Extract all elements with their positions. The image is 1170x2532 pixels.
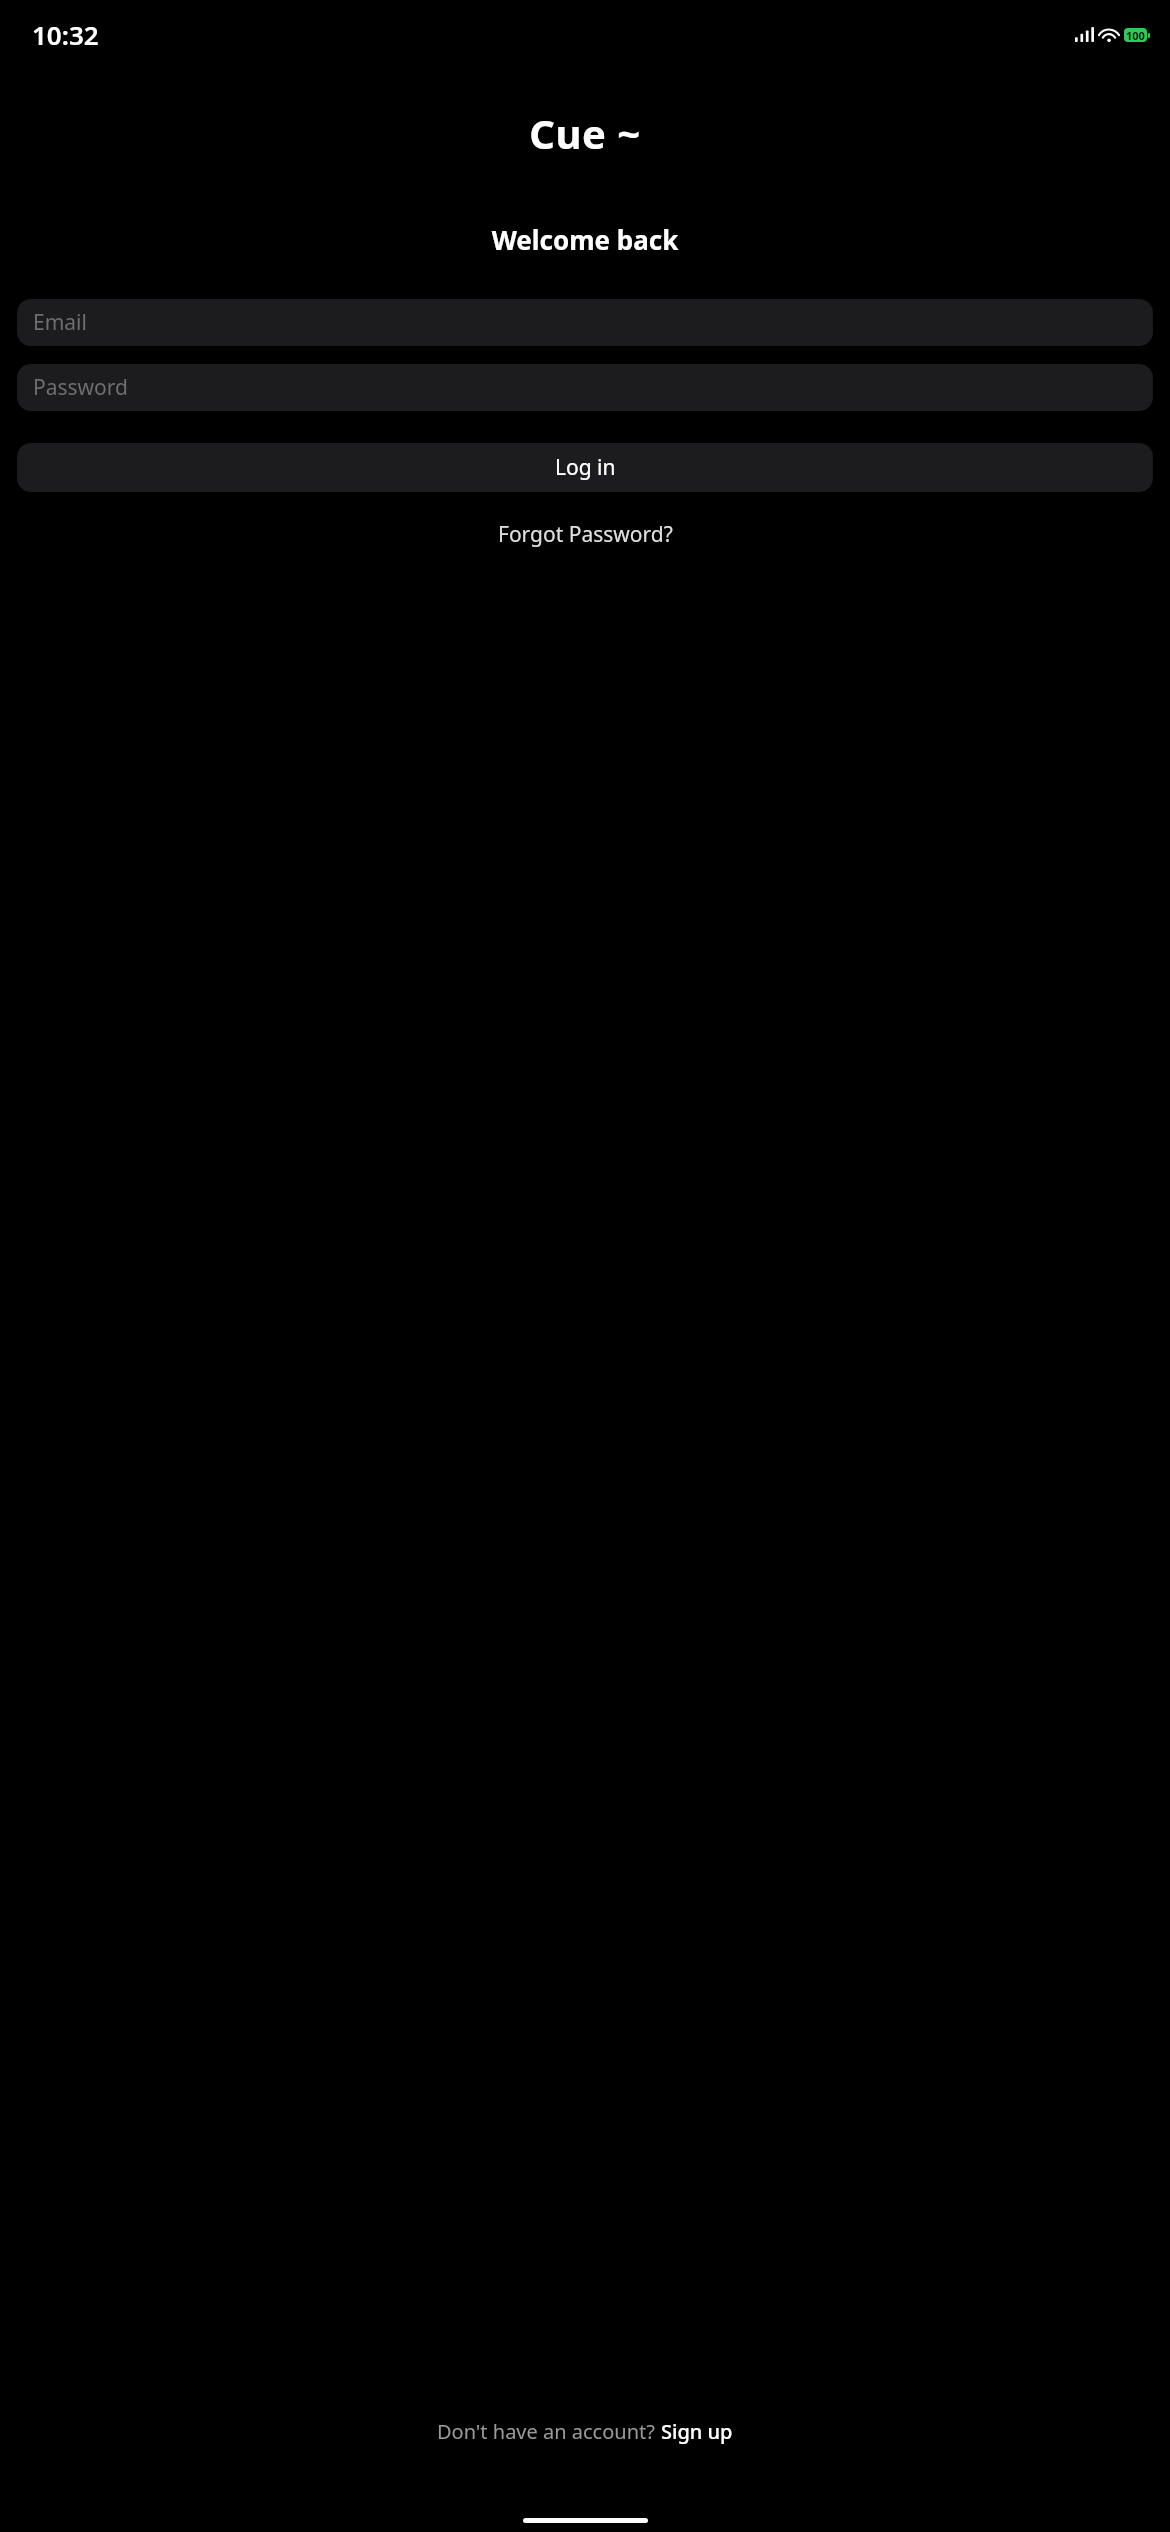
staticText: Sign up [661, 2418, 733, 2445]
staticText: Cue ~ [0, 106, 1170, 160]
button[interactable]: Password [17, 364, 1153, 411]
staticText: Email [33, 308, 87, 337]
button[interactable]: Forgot Password? [486, 512, 685, 557]
other: Wi-Fi [1100, 28, 1118, 42]
staticText: Forgot Password? [498, 520, 673, 549]
staticText: Log in [555, 453, 616, 482]
button[interactable]: Log in [17, 443, 1153, 492]
other: Cellular signal [1075, 27, 1094, 42]
staticText: 10:32 [32, 17, 99, 52]
staticText: Don't have an account? [437, 2418, 661, 2445]
staticText: Welcome back [0, 222, 1170, 257]
button[interactable]: Don't have an account? [0, 2412, 1170, 2451]
button[interactable]: Email [17, 299, 1153, 346]
staticText: 100 [1126, 28, 1145, 42]
staticText: Password [33, 373, 128, 402]
